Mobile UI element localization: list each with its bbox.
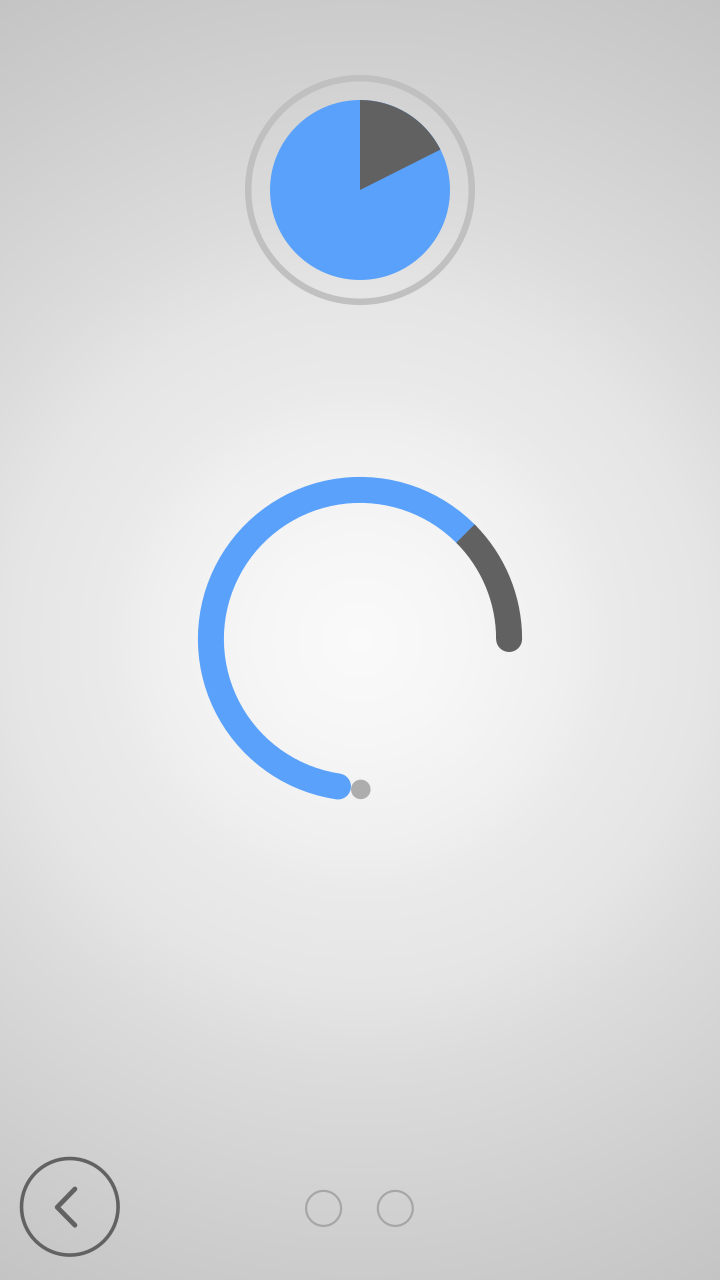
button[interactable]: Page 1 (304, 1189, 343, 1228)
button[interactable]: Back (19, 1156, 121, 1258)
button[interactable]: Page 2 (376, 1189, 415, 1228)
